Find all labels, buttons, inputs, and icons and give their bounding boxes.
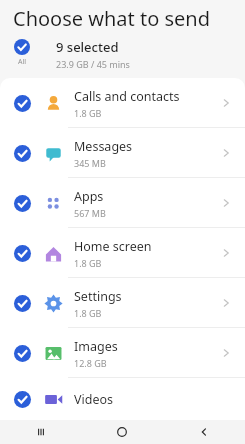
staticText: 9 selected xyxy=(56,38,119,56)
button[interactable]: Recent apps xyxy=(0,420,81,444)
button[interactable]: Home screen xyxy=(0,228,245,278)
staticText: 1.8 GB xyxy=(74,307,102,319)
button[interactable]: Back xyxy=(163,420,245,444)
button[interactable]: Messages xyxy=(0,128,245,178)
staticText: Messages xyxy=(74,138,133,155)
staticText: Choose what to send xyxy=(13,5,211,32)
staticText: 12.8 GB xyxy=(74,357,107,369)
staticText: Apps xyxy=(74,188,104,205)
staticText: Calls and contacts xyxy=(74,88,180,105)
staticText: 23.9 GB / 45 mins xyxy=(56,58,130,70)
staticText: Settings xyxy=(74,288,122,305)
staticText: Videos xyxy=(74,391,114,408)
staticText: 1.8 GB xyxy=(74,257,102,269)
staticText: All xyxy=(18,57,27,67)
staticText: 345 MB xyxy=(74,157,106,169)
button[interactable]: Settings xyxy=(0,278,245,328)
staticText: 1.8 GB xyxy=(74,107,102,119)
staticText: Images xyxy=(74,338,118,355)
button[interactable]: Videos xyxy=(0,378,245,420)
button[interactable]: All xyxy=(0,36,245,78)
button[interactable]: Calls and contacts xyxy=(0,78,245,128)
staticText: Home screen xyxy=(74,238,152,255)
staticText: 567 MB xyxy=(74,207,106,219)
button[interactable]: Home xyxy=(81,420,163,444)
button[interactable]: Images xyxy=(0,328,245,378)
button[interactable]: Apps xyxy=(0,178,245,228)
